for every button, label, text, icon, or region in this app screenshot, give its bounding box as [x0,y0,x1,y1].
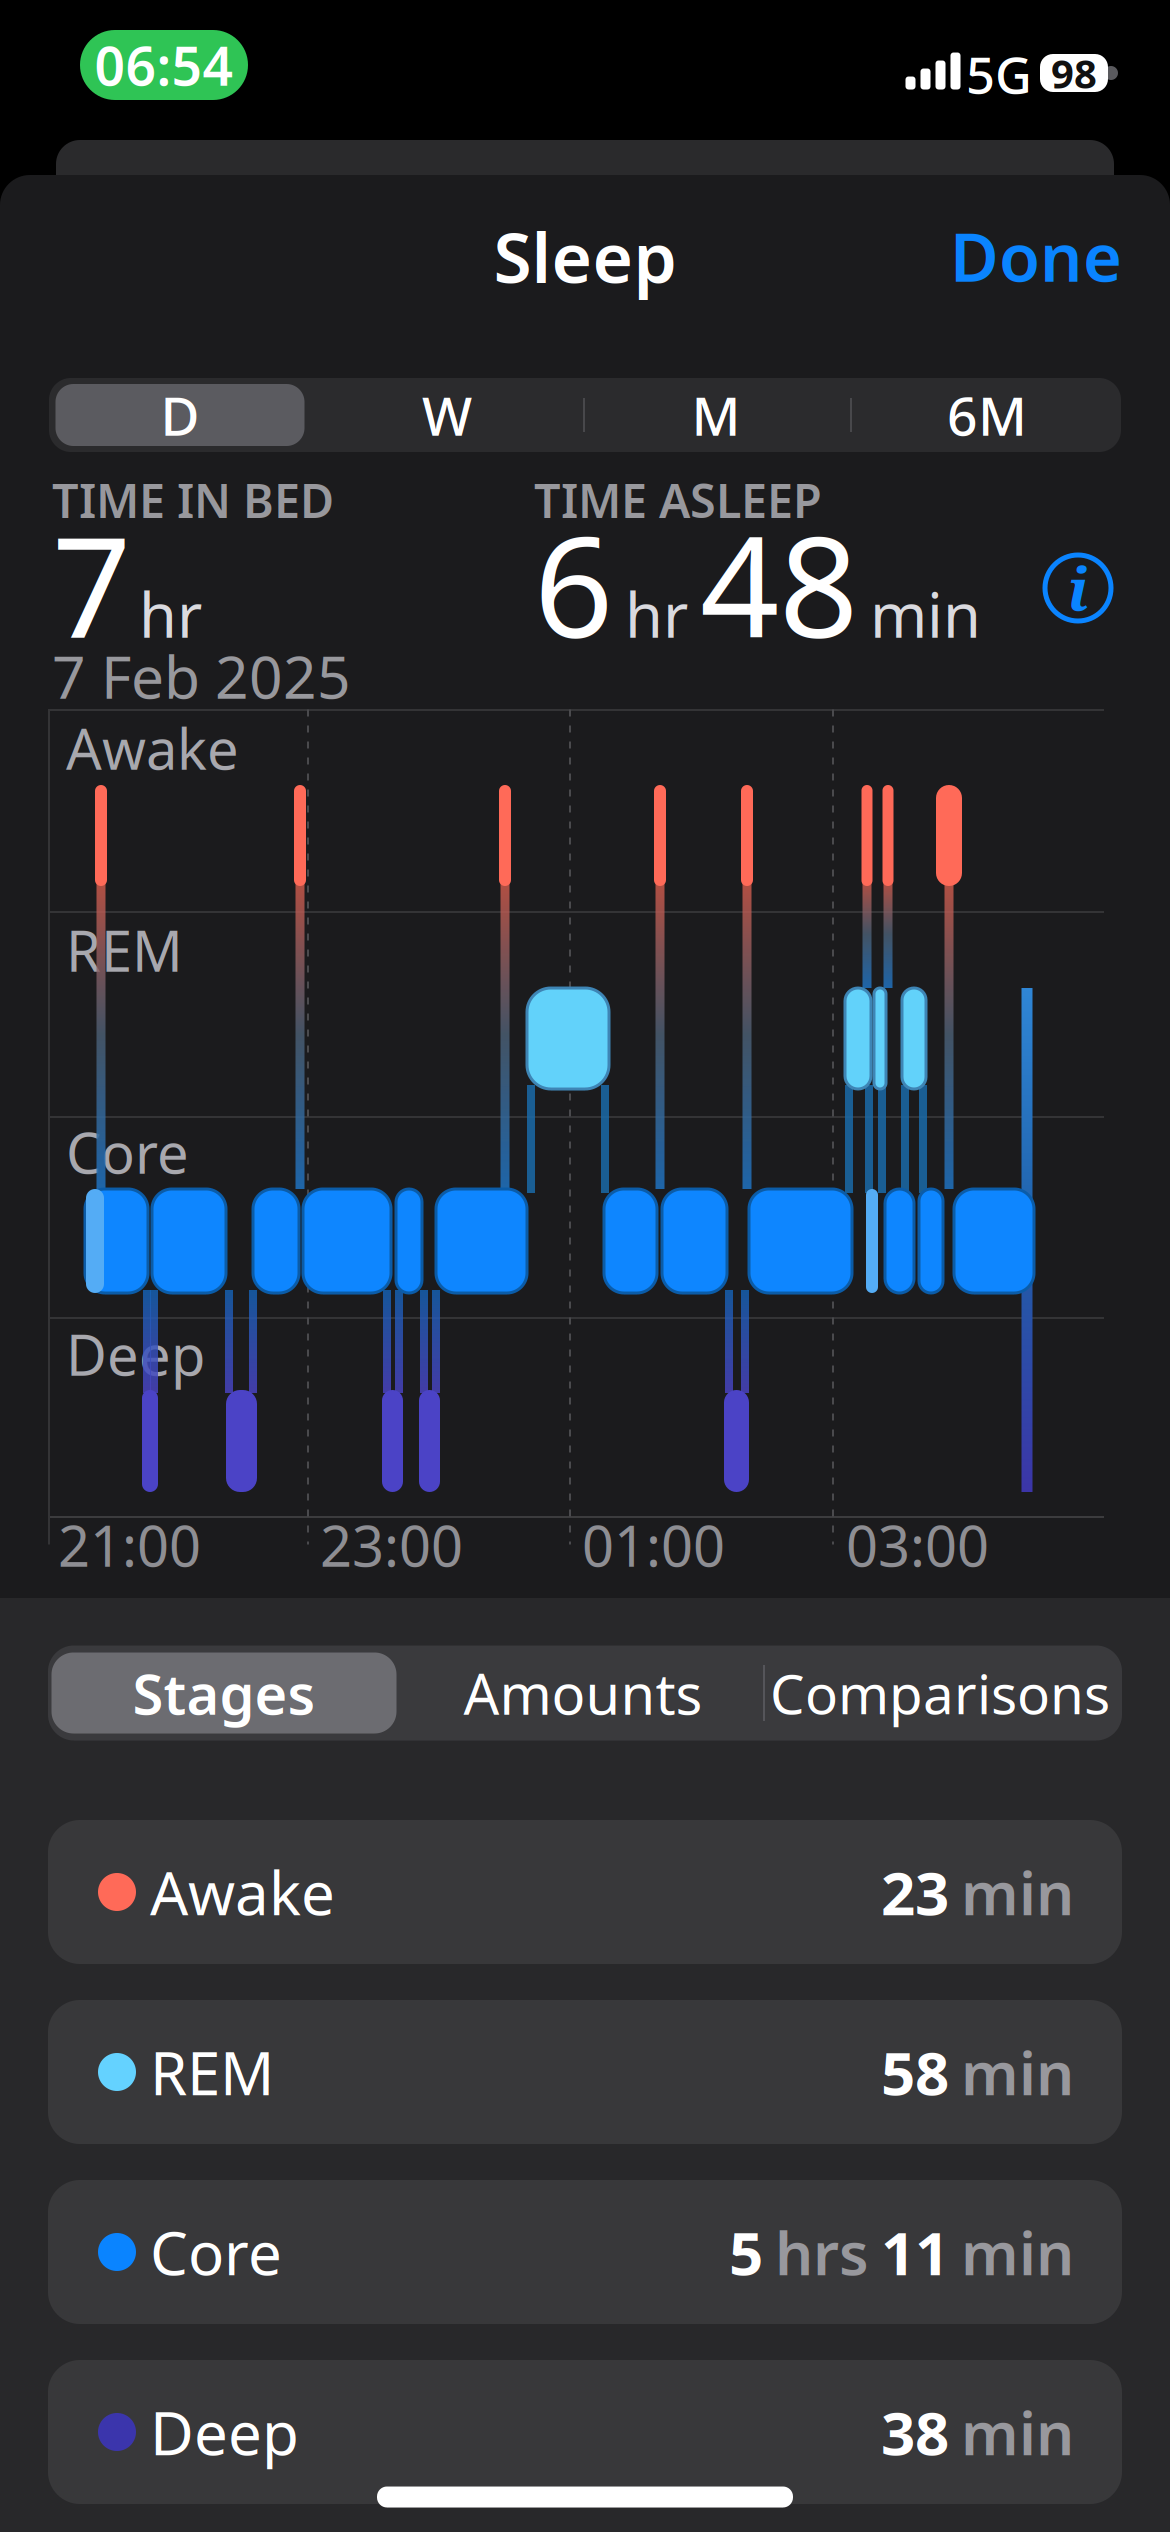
staticText: hr [139,573,202,655]
staticText: 7 [52,492,131,676]
staticText: 23:00 [320,1508,463,1582]
button[interactable]: Stages [54,1645,394,1740]
staticText: min [870,573,981,655]
staticText: 01:00 [582,1508,725,1582]
staticText: 38 [881,2392,949,2472]
staticText: Awake [150,1852,335,1932]
staticText: 6 [534,492,613,676]
staticText: 21:00 [58,1508,201,1582]
staticText: W [422,380,472,450]
staticText: Sleep [493,210,676,302]
staticText: 5G [966,40,1032,108]
staticText: Deep [150,2392,299,2472]
button[interactable]: W [317,378,577,452]
button[interactable]: Amounts [413,1645,753,1740]
staticText: Awake [66,711,239,785]
staticText: TIME ASLEEP [534,469,822,531]
staticText: 11 [881,2212,949,2292]
staticText: i [1067,548,1088,628]
staticText: Core [66,1115,189,1189]
button[interactable]: M [586,378,846,452]
staticText: 03:00 [846,1508,989,1582]
staticText: Amounts [463,1656,702,1730]
staticText: 7 Feb 2025 [52,637,351,715]
staticText: Stages [132,1656,315,1730]
button[interactable]: i [1043,553,1113,623]
staticText: REM [66,913,183,987]
staticText: min [961,2212,1074,2292]
staticText: 06:54 [94,30,233,100]
staticText: Core [150,2212,282,2292]
staticText: Done [950,212,1122,300]
staticText: 98 [1051,46,1097,99]
staticText: 48 [700,492,858,676]
staticText: 58 [881,2032,949,2112]
staticText: TIME IN BED [52,469,334,531]
button[interactable]: Comparisons [740,1645,1140,1740]
staticText: min [961,2032,1074,2112]
button[interactable]: D [50,378,310,452]
staticText: M [691,380,740,450]
staticText: hrs [775,2212,869,2292]
staticText: 5 [729,2212,763,2292]
staticText: Comparisons [770,1657,1110,1729]
button[interactable]: Done [902,212,1122,300]
staticText: 23 [881,1852,949,1932]
staticText: D [160,380,199,450]
staticText: 6M [947,380,1027,450]
button[interactable]: 6M [857,378,1117,452]
staticText: min [961,1852,1074,1932]
staticText: min [961,2392,1074,2472]
staticText: Deep [66,1317,205,1391]
staticText: hr [625,573,688,655]
staticText: REM [150,2032,274,2112]
button[interactable]: 06:54 [80,30,248,100]
